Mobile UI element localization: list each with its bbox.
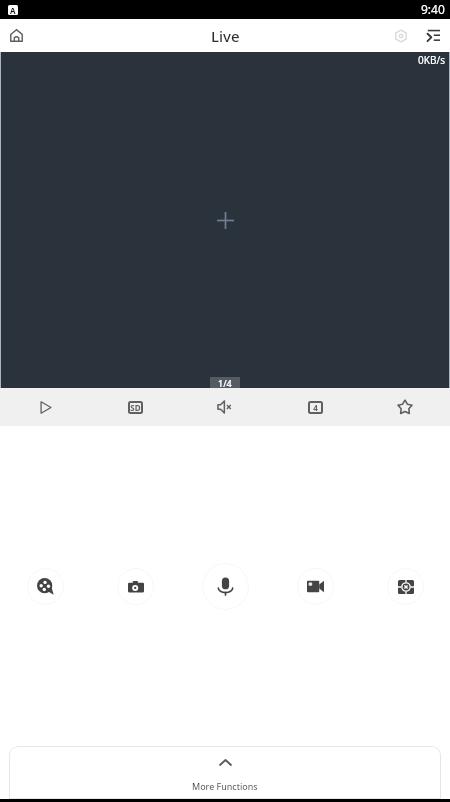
button[interactable]: Device list [417,19,450,52]
staticText: 1/4 [218,377,232,388]
button[interactable]: More Functions [9,746,441,799]
button[interactable]: Settings [384,19,417,52]
button[interactable]: Talk [202,563,249,610]
button[interactable]: Mute [180,388,270,426]
staticText: 9:40 [421,1,445,17]
button[interactable]: Favorite [360,388,450,426]
button[interactable]: Snapshot [117,568,154,605]
staticText: 4 [313,402,318,413]
button[interactable]: Home [0,19,33,52]
button[interactable]: PTZ [387,568,424,605]
staticText: SD [130,402,141,413]
staticText: 0KB/s [418,53,445,67]
button[interactable]: Quality SD [90,388,180,426]
button[interactable]: Record [297,568,334,605]
button[interactable]: Play [0,388,90,426]
staticText: Live [211,26,240,46]
staticText: A [10,5,16,15]
button[interactable]: Split 4 [270,388,360,426]
staticText: More Functions [192,780,258,792]
button[interactable]: Playback [27,568,64,605]
